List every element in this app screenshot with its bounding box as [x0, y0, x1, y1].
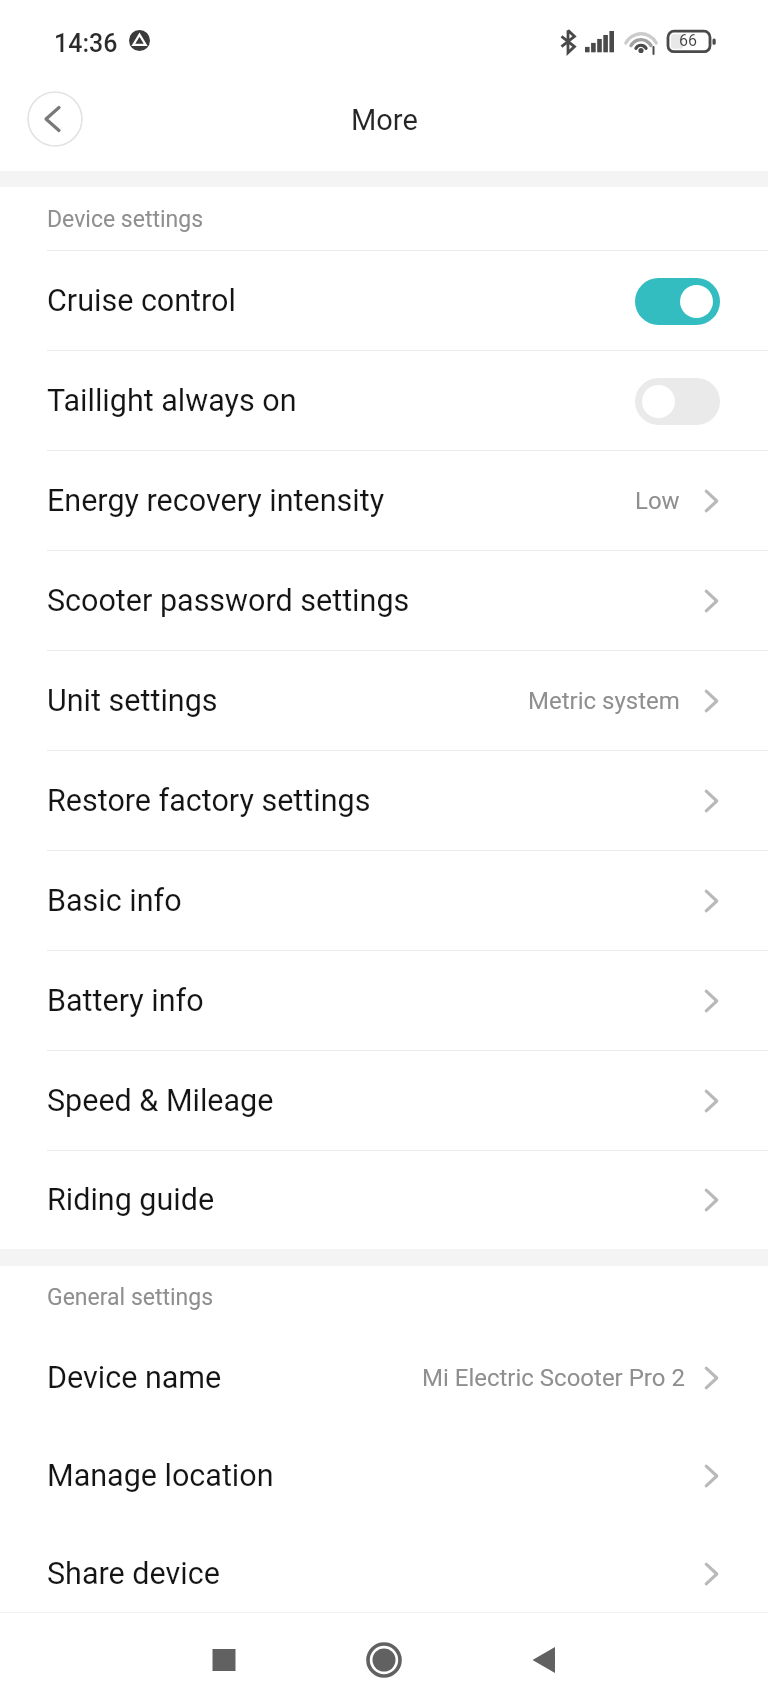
staticText: 14:36 [54, 29, 118, 58]
staticText: Mi Electric Scooter Pro 2 [422, 1364, 685, 1392]
staticText: 66 [679, 31, 697, 50]
staticText: Device name [47, 1360, 422, 1396]
button[interactable]: Back [464, 1613, 624, 1706]
button[interactable]: Taillight always on [0, 351, 768, 451]
staticText: Riding guide [47, 1182, 696, 1218]
staticText: Unit settings [47, 683, 528, 719]
button[interactable]: Battery info [0, 951, 768, 1051]
button[interactable]: Recent apps [144, 1613, 304, 1706]
button[interactable]: Cruise control [0, 251, 768, 351]
button[interactable]: Device name [0, 1329, 768, 1427]
button[interactable]: Back [27, 91, 83, 147]
staticText: Metric system [528, 687, 680, 715]
button[interactable]: Riding guide [0, 1151, 768, 1249]
button[interactable]: Restore factory settings [0, 751, 768, 851]
staticText: Device settings [47, 206, 204, 233]
button[interactable]: Unit settings [0, 651, 768, 751]
staticText: General settings [47, 1284, 214, 1311]
staticText: Speed & Mileage [47, 1083, 696, 1119]
staticText: Taillight always on [47, 383, 635, 419]
button[interactable]: Scooter password settings [0, 551, 768, 651]
button[interactable]: Basic info [0, 851, 768, 951]
button[interactable]: Speed & Mileage [0, 1051, 768, 1151]
button[interactable]: Manage location [0, 1427, 768, 1525]
button[interactable]: Energy recovery intensity [0, 451, 768, 551]
staticText: Energy recovery intensity [47, 483, 635, 519]
staticText: Low [635, 487, 680, 515]
staticText: More [351, 103, 418, 137]
staticText: Restore factory settings [47, 783, 696, 819]
staticText: Share device [47, 1556, 696, 1592]
button[interactable]: Home [304, 1613, 464, 1706]
staticText: Scooter password settings [47, 583, 696, 619]
staticText: Basic info [47, 883, 696, 919]
staticText: Manage location [47, 1458, 696, 1494]
staticText: Battery info [47, 983, 696, 1019]
staticText: Cruise control [47, 283, 635, 319]
button[interactable]: Share device [0, 1525, 768, 1623]
